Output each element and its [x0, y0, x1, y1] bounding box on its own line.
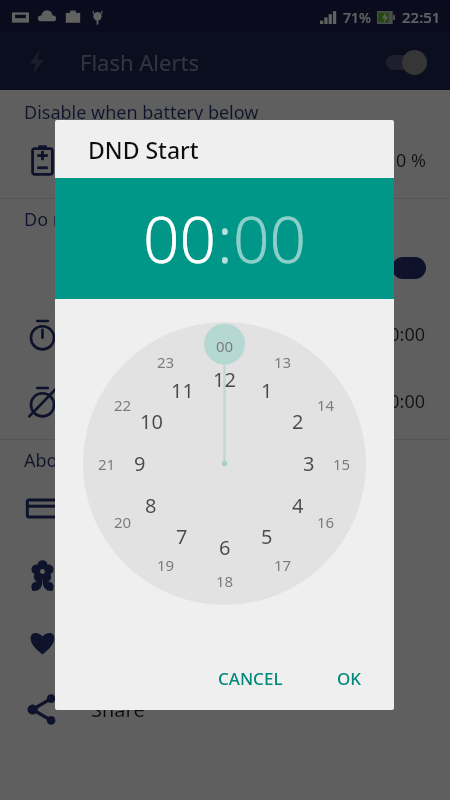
staticText: : [217, 195, 233, 282]
staticText: OK [337, 667, 362, 690]
staticText: 20 [114, 512, 132, 532]
button[interactable] [0, 475, 450, 542]
staticText: 19 [157, 555, 175, 575]
staticText: 1 [261, 377, 273, 404]
button[interactable]: Enable Flash Alerts [380, 45, 434, 79]
button[interactable]: CANCEL [206, 657, 295, 700]
button[interactable]: 00:00 [0, 368, 450, 435]
staticText: 12 [213, 366, 236, 393]
staticText: 23 [157, 352, 175, 372]
staticText: About [24, 448, 76, 473]
staticText: 6 [219, 534, 231, 561]
staticText: 11 [171, 377, 194, 404]
staticText: 22:51 [402, 7, 441, 27]
staticText: 17 [274, 555, 292, 575]
staticText: 9 [134, 450, 146, 477]
staticText: 00:00 [379, 389, 426, 414]
button[interactable] [0, 542, 450, 609]
staticText: 4 [292, 492, 304, 519]
staticText: Disable when battery below [24, 100, 259, 125]
staticText: Share [91, 696, 145, 723]
staticText: 00 [143, 195, 217, 282]
staticText: 13 [274, 352, 292, 372]
staticText: 2 [292, 408, 304, 435]
staticText: 00 [233, 195, 307, 282]
staticText: 5 [261, 523, 273, 550]
button[interactable] [0, 234, 450, 301]
staticText: DND Start [88, 134, 199, 165]
staticText: CANCEL [218, 667, 283, 690]
button[interactable]: 00:00 [0, 301, 450, 368]
staticText: 0 % [396, 148, 426, 173]
other: Flash [24, 49, 50, 75]
button[interactable]: OK [325, 657, 374, 700]
staticText: 00 [216, 336, 234, 356]
staticText: 71% [343, 8, 371, 27]
staticText: 16 [317, 512, 335, 532]
button[interactable]: Share [0, 676, 450, 743]
staticText: 21 [98, 454, 116, 474]
staticText: Flash Alerts [80, 47, 199, 77]
staticText: 8 [145, 492, 157, 519]
staticText: 3 [303, 450, 315, 477]
staticText: 18 [216, 571, 234, 591]
staticText: 15 [333, 454, 351, 474]
staticText: 22 [114, 395, 132, 415]
staticText: 7 [176, 523, 188, 550]
staticText: 00:00 [379, 322, 426, 347]
button[interactable]: 0 % [0, 127, 450, 194]
staticText: 10 [140, 408, 163, 435]
staticText: 14 [317, 395, 335, 415]
button[interactable] [0, 609, 450, 676]
staticText: Do not disturb [24, 207, 147, 232]
